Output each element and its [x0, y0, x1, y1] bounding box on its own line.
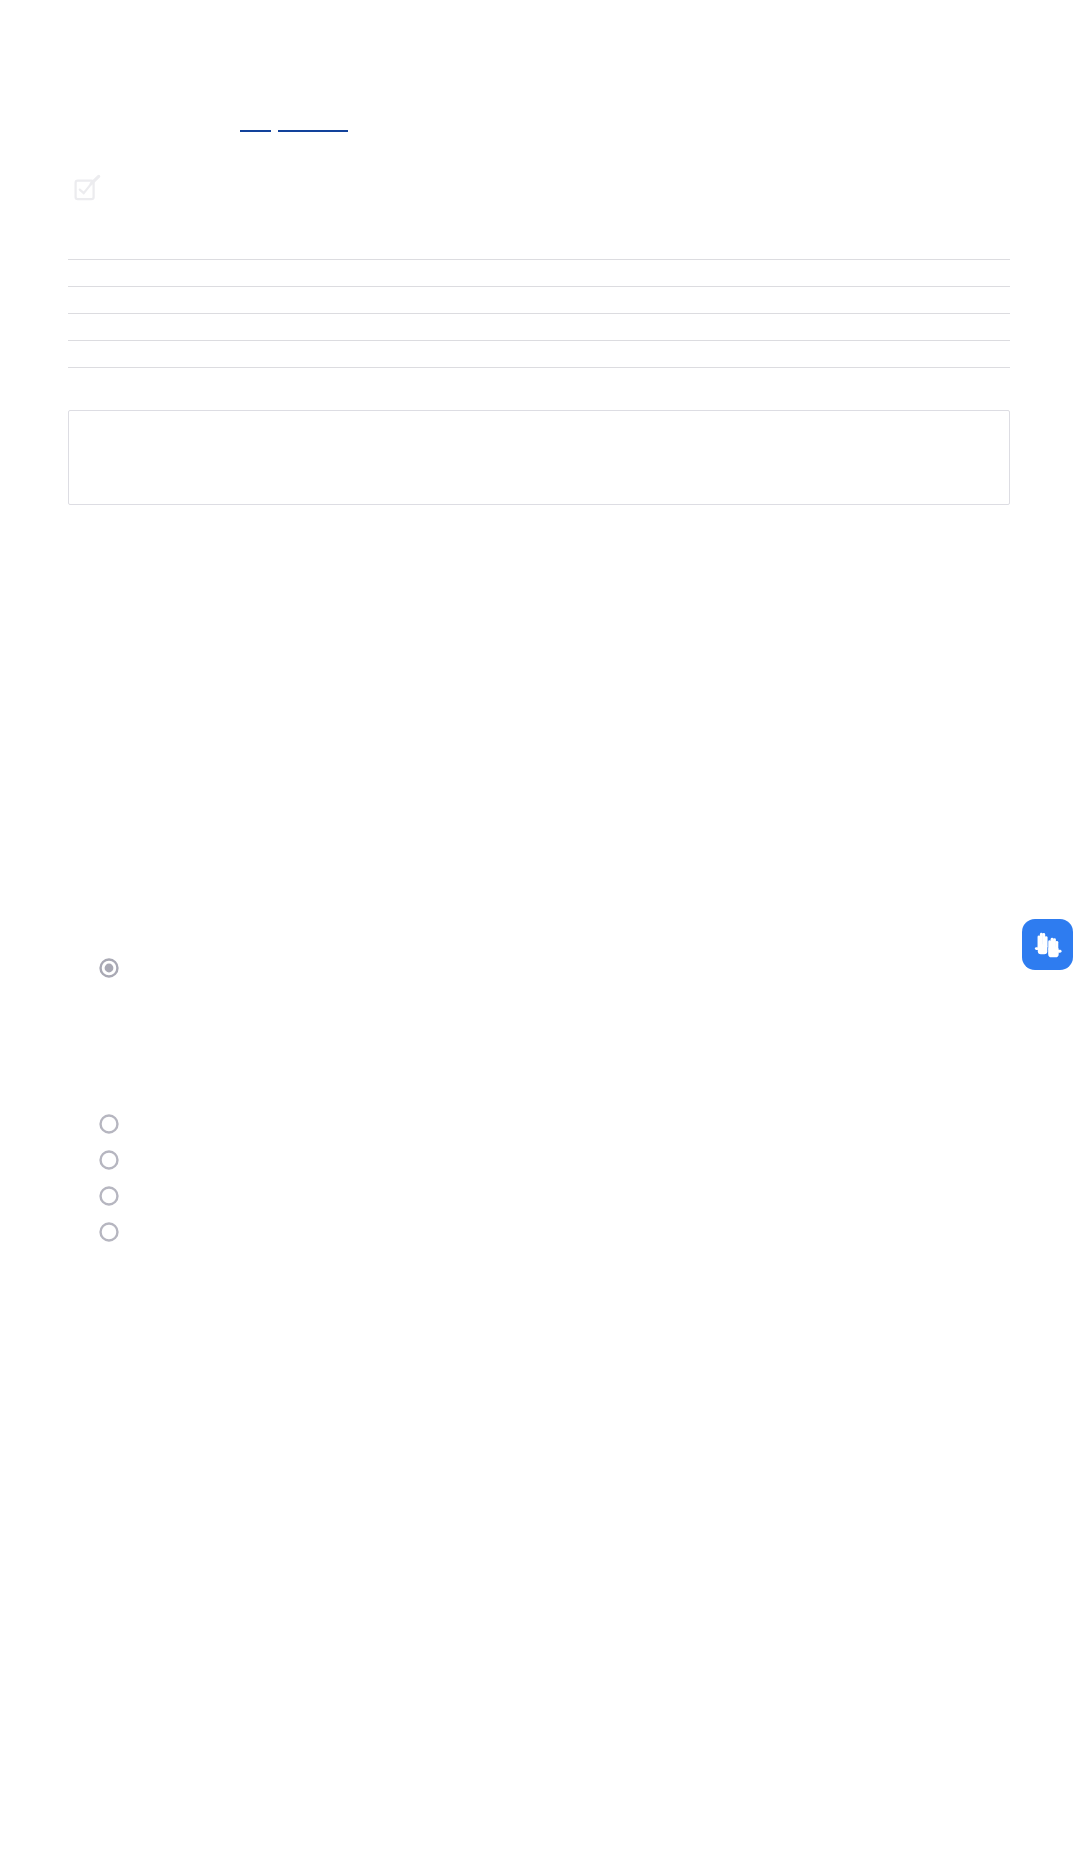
button[interactable]: Option 3 — [98, 1149, 120, 1171]
button[interactable]: Selected option — [98, 957, 120, 979]
button[interactable]: Option 5 — [98, 1221, 120, 1243]
button[interactable] — [278, 122, 348, 132]
button[interactable] — [68, 410, 1010, 505]
button[interactable]: Option 2 — [98, 1113, 120, 1135]
button[interactable] — [240, 122, 271, 132]
button[interactable]: Edit — [72, 174, 102, 204]
button[interactable]: Sign language accessibility — [1022, 919, 1073, 970]
button[interactable]: Option 4 — [98, 1185, 120, 1207]
